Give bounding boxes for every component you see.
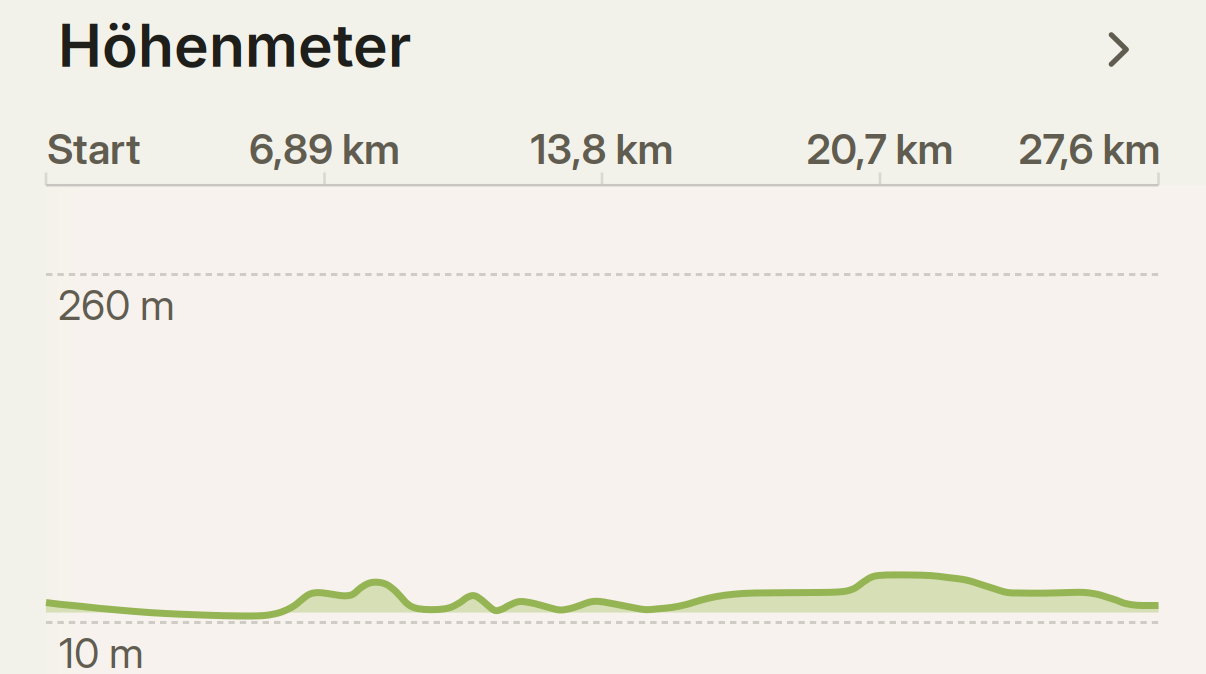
staticText: 10 m (59, 628, 144, 674)
staticText: Höhenmeter (58, 10, 411, 81)
staticText: 260 m (58, 280, 175, 330)
button[interactable]: Höhenmeter, Details anzeigen (0, 0, 1206, 100)
staticText: Start (47, 124, 140, 174)
staticText: 13,8 km (530, 124, 673, 174)
staticText: 20,7 km (806, 124, 953, 174)
staticText: 27,6 km (1018, 124, 1160, 174)
staticText: 6,89 km (249, 124, 400, 174)
